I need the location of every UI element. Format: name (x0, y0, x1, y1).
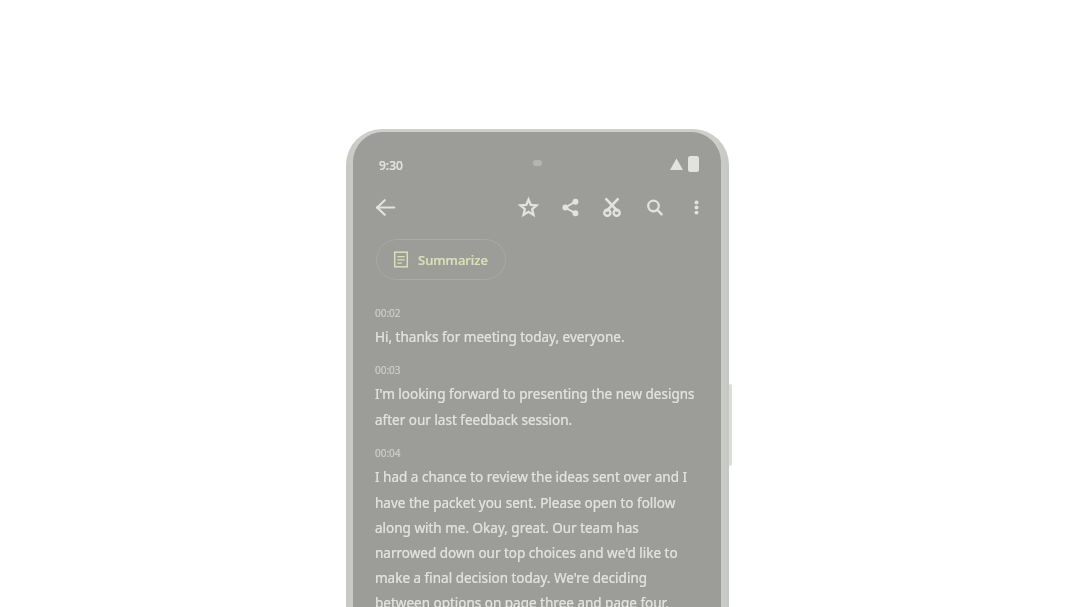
staticText: 9:30 (379, 157, 403, 173)
staticText: Hi, thanks for meeting today, everyone. (375, 328, 625, 346)
button[interactable]: Add to favourites (514, 193, 542, 221)
button[interactable]: Search transcript (640, 193, 668, 221)
button[interactable]: 00:02 (375, 306, 625, 346)
staticText: 00:04 (375, 446, 401, 460)
button[interactable]: 00:03 (375, 363, 703, 429)
staticText: I'm looking forward to presenting the ne… (375, 385, 703, 429)
button[interactable]: Summarize (376, 239, 506, 280)
button[interactable]: 00:04 (375, 446, 703, 607)
staticText: 00:03 (375, 363, 401, 377)
button[interactable]: Back (371, 193, 399, 221)
button[interactable]: More options (682, 193, 710, 221)
staticText: I had a chance to review the ideas sent … (375, 468, 703, 607)
staticText: 00:02 (375, 306, 401, 320)
button[interactable]: Trim recording (598, 193, 626, 221)
staticText: Summarize (418, 251, 489, 269)
button[interactable]: Share (556, 193, 584, 221)
